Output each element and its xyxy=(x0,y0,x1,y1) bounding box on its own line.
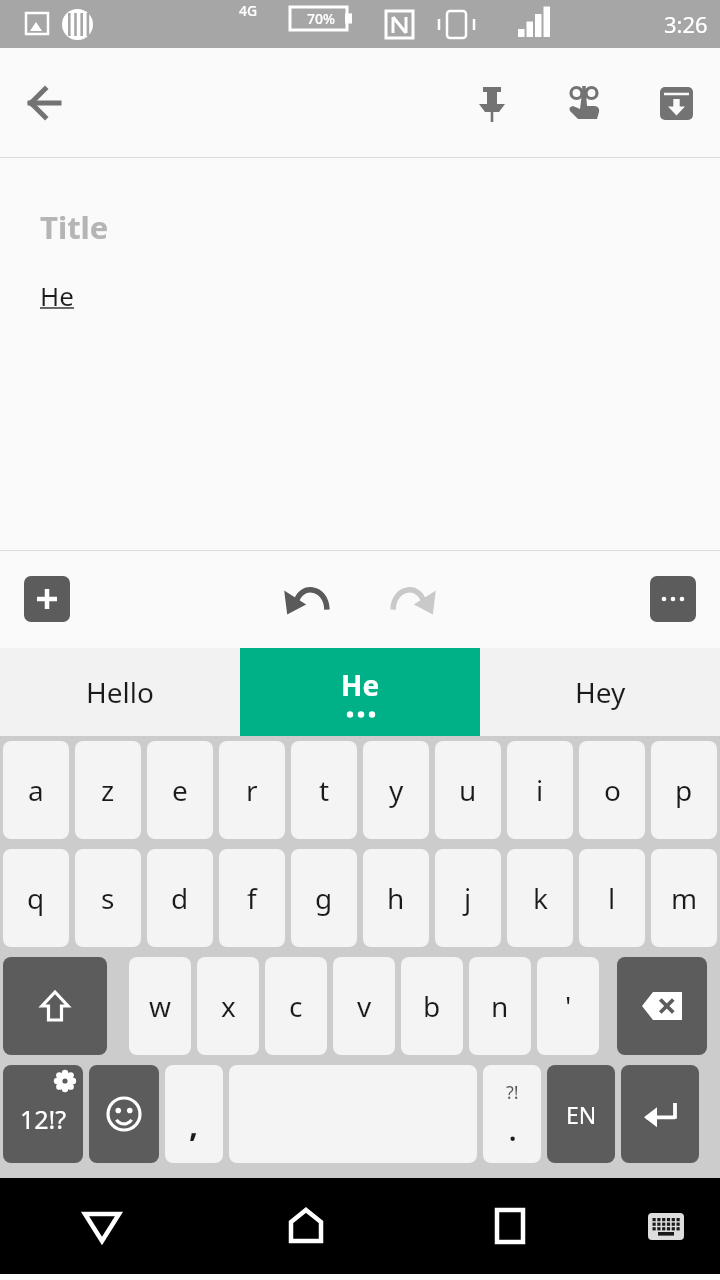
button[interactable]: Switch keyboard xyxy=(612,1178,720,1274)
button[interactable]: t xyxy=(291,741,357,839)
button[interactable]: Recents xyxy=(408,1178,612,1274)
button[interactable]: m xyxy=(651,849,717,947)
button[interactable]: w xyxy=(129,957,191,1055)
button[interactable]: EN xyxy=(547,1065,615,1163)
button[interactable]: x xyxy=(197,957,259,1055)
button[interactable]: Period xyxy=(483,1065,541,1163)
button[interactable]: Hey xyxy=(480,648,720,736)
button[interactable]: p xyxy=(651,741,717,839)
button[interactable]: d xyxy=(147,849,213,947)
staticText: u xyxy=(459,771,477,809)
button[interactable]: a xyxy=(3,741,69,839)
staticText: e xyxy=(172,771,188,809)
button[interactable]: ' xyxy=(537,957,599,1055)
button[interactable]: Reminder xyxy=(548,67,620,139)
button[interactable]: i xyxy=(507,741,573,839)
staticText: l xyxy=(608,879,616,917)
staticText: , xyxy=(189,1103,199,1147)
button[interactable]: Hello xyxy=(0,648,240,736)
staticText: i xyxy=(536,771,544,809)
button[interactable]: Pin xyxy=(456,67,528,139)
staticText: w xyxy=(149,987,172,1025)
staticText: r xyxy=(246,771,258,809)
button[interactable]: v xyxy=(333,957,395,1055)
button[interactable]: q xyxy=(3,849,69,947)
staticText: o xyxy=(604,771,621,809)
staticText: c xyxy=(289,987,303,1025)
button[interactable]: s xyxy=(75,849,141,947)
button[interactable]: k xyxy=(507,849,573,947)
staticText: j xyxy=(464,879,472,917)
staticText: Hello xyxy=(86,673,154,711)
staticText: q xyxy=(27,879,45,917)
button[interactable]: Add xyxy=(24,576,70,622)
staticText: ?! xyxy=(506,1080,519,1105)
staticText: v xyxy=(357,987,372,1025)
button[interactable]: c xyxy=(265,957,327,1055)
staticText: b xyxy=(423,987,441,1025)
button[interactable]: He xyxy=(240,648,480,736)
button[interactable]: Backspace xyxy=(617,957,707,1055)
staticText: n xyxy=(491,987,509,1025)
staticText: 70% xyxy=(307,9,335,28)
staticText: EN xyxy=(566,1099,597,1130)
staticText: d xyxy=(171,879,189,917)
button[interactable]: Undo xyxy=(280,567,344,631)
staticText: 3:26 xyxy=(664,9,708,39)
button[interactable]: n xyxy=(469,957,531,1055)
button[interactable]: Enter xyxy=(621,1065,699,1163)
staticText: Hey xyxy=(575,673,626,711)
staticText: Title xyxy=(40,206,109,248)
staticText: h xyxy=(387,879,405,917)
staticText: m xyxy=(671,879,698,917)
staticText: y xyxy=(389,771,404,809)
staticText: 12!? xyxy=(20,1102,67,1136)
button[interactable]: g xyxy=(291,849,357,947)
button[interactable]: o xyxy=(579,741,645,839)
staticText: . xyxy=(509,1113,517,1148)
staticText: t xyxy=(319,771,330,809)
button[interactable]: b xyxy=(401,957,463,1055)
button[interactable]: l xyxy=(579,849,645,947)
staticText: He xyxy=(40,278,74,313)
staticText: k xyxy=(533,879,548,917)
staticText: x xyxy=(221,987,236,1025)
staticText: s xyxy=(101,879,115,917)
button[interactable]: Back xyxy=(8,67,80,139)
button[interactable]: Archive xyxy=(640,67,712,139)
staticText: p xyxy=(675,771,693,809)
staticText: a xyxy=(28,771,44,809)
staticText: He xyxy=(341,666,380,704)
button[interactable]: Emoji xyxy=(89,1065,159,1163)
button[interactable]: j xyxy=(435,849,501,947)
button[interactable]: More options xyxy=(650,576,696,622)
staticText: g xyxy=(315,879,333,917)
button[interactable]: e xyxy=(147,741,213,839)
button[interactable]: h xyxy=(363,849,429,947)
button[interactable]: Hide keyboard xyxy=(0,1178,204,1274)
button[interactable]: Home xyxy=(204,1178,408,1274)
button[interactable]: Shift xyxy=(3,957,107,1055)
button[interactable]: Symbols xyxy=(3,1065,83,1163)
button[interactable]: f xyxy=(219,849,285,947)
button[interactable]: Comma xyxy=(165,1065,223,1163)
staticText: ' xyxy=(565,987,572,1025)
button[interactable]: y xyxy=(363,741,429,839)
staticText: z xyxy=(101,771,115,809)
staticText: 4G xyxy=(239,1,258,20)
button[interactable]: u xyxy=(435,741,501,839)
staticText: f xyxy=(247,879,257,917)
button[interactable]: Redo xyxy=(376,567,440,631)
button[interactable]: r xyxy=(219,741,285,839)
button[interactable]: z xyxy=(75,741,141,839)
